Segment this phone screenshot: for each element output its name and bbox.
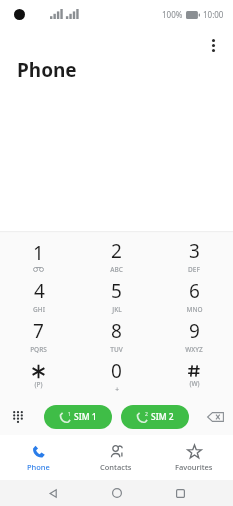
staticText: WXYZ [185, 345, 203, 354]
staticText: Favourites [175, 462, 213, 472]
button[interactable]: (W) [155, 356, 233, 396]
button[interactable]: (P) [0, 356, 77, 396]
staticText: Phone [27, 462, 50, 472]
staticText: 7 [33, 318, 44, 344]
staticText: DEF [188, 265, 200, 274]
button[interactable]: Favourites [155, 435, 233, 480]
button[interactable]: 9 [155, 316, 233, 356]
staticText: PQRS [30, 345, 47, 354]
button[interactable]: 4 [0, 276, 77, 316]
staticText: (W) [189, 379, 200, 388]
staticText: 2 [111, 238, 122, 264]
staticText: JKL [112, 305, 122, 314]
button[interactable]: 1 [44, 405, 112, 429]
staticText: 100% [162, 9, 183, 20]
staticText: 2 [145, 411, 148, 418]
staticText: MNO [186, 305, 203, 314]
button[interactable]: 1 [0, 236, 77, 276]
button[interactable]: 6 [155, 276, 233, 316]
staticText: 1 [68, 411, 71, 418]
staticText: 8 [111, 318, 122, 344]
staticText: (P) [34, 380, 43, 389]
button[interactable]: More options [200, 32, 226, 58]
staticText: 3 [189, 238, 200, 264]
button[interactable]: Recents [169, 482, 191, 504]
staticText: Phone [17, 57, 77, 83]
staticText: GHI [33, 305, 45, 314]
button[interactable]: Back [42, 482, 64, 504]
button[interactable]: Dialpad [7, 406, 29, 428]
button[interactable]: Contacts [77, 435, 155, 480]
staticText: 10:00 [203, 9, 224, 20]
staticText: 4 [34, 278, 45, 304]
staticText: Contacts [100, 462, 132, 472]
staticText: ABC [110, 265, 123, 274]
staticText: TUV [110, 345, 123, 354]
button[interactable]: 2 [121, 405, 189, 429]
staticText: 0 [111, 358, 122, 384]
button[interactable]: Phone [0, 435, 77, 480]
staticText: SIM 1 [74, 411, 97, 423]
button[interactable]: 5 [77, 276, 155, 316]
staticText: + [115, 385, 119, 394]
staticText: SIM 2 [151, 411, 174, 423]
button[interactable]: 0 [77, 356, 155, 396]
button[interactable]: Home [106, 482, 128, 504]
staticText: 6 [189, 278, 200, 304]
button[interactable]: 2 [77, 236, 155, 276]
button[interactable]: 7 [0, 316, 77, 356]
staticText: 5 [111, 278, 122, 304]
button[interactable]: Backspace [203, 407, 227, 427]
button[interactable]: 8 [77, 316, 155, 356]
button[interactable]: 3 [155, 236, 233, 276]
staticText: 1 [33, 240, 44, 266]
staticText: 9 [189, 318, 200, 344]
